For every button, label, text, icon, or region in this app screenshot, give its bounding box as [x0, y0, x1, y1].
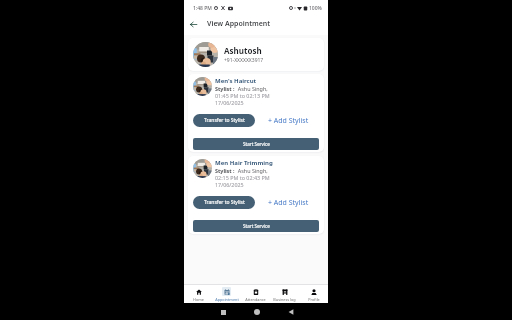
button[interactable]: Ashutosh [188, 38, 324, 71]
staticText: Profile [308, 297, 320, 302]
staticText: Transfer to Stylist [204, 117, 245, 124]
staticText: Home [193, 297, 204, 302]
staticText: + Add Stylist [268, 116, 309, 126]
staticText: Transfer to Stylist [204, 199, 245, 206]
button[interactable]: Attendance [241, 285, 270, 303]
staticText: Attendance [245, 297, 266, 302]
staticText: Appointment [215, 297, 239, 302]
button[interactable]: + Add Stylist [268, 198, 309, 208]
staticText: Men Hair Trimming [215, 159, 273, 167]
button[interactable]: Back [285, 306, 297, 318]
button[interactable]: Profile [299, 285, 328, 303]
button[interactable]: + Add Stylist [268, 116, 309, 126]
staticText: 17/06/2025 [215, 181, 244, 188]
button[interactable]: Back [184, 15, 202, 33]
button[interactable]: Transfer to Stylist [193, 114, 255, 127]
button[interactable]: Appointment [212, 285, 241, 303]
staticText: 1:48 PM [193, 5, 212, 12]
button[interactable]: Start Service [193, 138, 319, 150]
button[interactable]: Home [251, 306, 263, 318]
button[interactable]: Transfer to Stylist [193, 196, 255, 209]
staticText: Ashutosh [224, 45, 262, 56]
staticText: Stylist : [215, 167, 235, 174]
button[interactable]: Recents [217, 306, 229, 318]
staticText: Business log [273, 297, 296, 302]
staticText: View Appointment [207, 19, 271, 29]
staticText: + Add Stylist [268, 198, 309, 208]
staticText: 01:45 PM to 02:13 PM [215, 92, 270, 99]
button[interactable]: Business log [270, 285, 299, 303]
staticText: Stylist : [215, 85, 235, 92]
button[interactable]: Start Service [193, 220, 319, 232]
staticText: +91-XXXXXX3917 [224, 57, 264, 64]
staticText: Men's Haircut [215, 77, 257, 85]
staticText: 100% [309, 5, 322, 12]
button[interactable]: Home [184, 285, 212, 303]
staticText: Ashu Singh, [235, 85, 268, 92]
staticText: Ashu Singh, [235, 167, 268, 174]
staticText: 02:15 PM to 02:43 PM [215, 174, 270, 181]
staticText: Start Service [243, 141, 270, 147]
staticText: Start Service [243, 223, 270, 229]
staticText: 17/06/2025 [215, 99, 244, 106]
